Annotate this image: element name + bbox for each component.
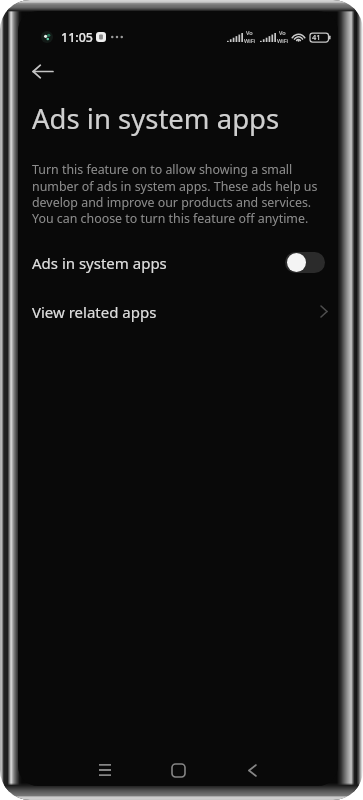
staticText: Ads in system apps (32, 253, 167, 273)
button[interactable]: Back (215, 754, 289, 786)
button[interactable]: Home (141, 754, 215, 786)
staticText: Turn this feature on to allow showing a … (32, 161, 332, 226)
staticText: 41 (312, 32, 321, 42)
staticText: Vo (246, 29, 253, 37)
button[interactable]: View related apps (18, 287, 338, 336)
staticText: View related apps (32, 302, 157, 322)
staticText: WiFi (277, 37, 288, 45)
button[interactable]: Ads in system apps (18, 238, 338, 287)
button[interactable]: Recents (68, 754, 141, 786)
staticText: Vo (279, 29, 286, 37)
staticText: 11:05 (61, 29, 94, 46)
staticText: WiFi (244, 37, 255, 45)
button[interactable]: Back (24, 53, 62, 89)
staticText: Ads in system apps (32, 100, 280, 137)
